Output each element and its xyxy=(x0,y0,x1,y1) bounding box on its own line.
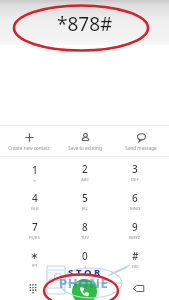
button[interactable]: Backspace xyxy=(123,273,153,300)
staticText: DEF xyxy=(131,177,139,183)
staticText: Save to existing xyxy=(68,145,102,151)
button[interactable]: 2 xyxy=(60,158,110,187)
staticText: ABC xyxy=(81,177,90,183)
button[interactable]: 0 xyxy=(60,245,110,274)
staticText: 7 xyxy=(32,220,38,234)
button[interactable]: 6 xyxy=(110,187,160,216)
button[interactable]: Show keypad xyxy=(18,273,48,300)
staticText: 5 xyxy=(82,191,88,205)
button[interactable]: Create new contact xyxy=(0,126,57,156)
staticText: *878# xyxy=(57,11,113,37)
staticText: # xyxy=(132,249,139,263)
button[interactable]: 7 xyxy=(9,216,60,245)
staticText: 9 xyxy=(132,220,138,234)
button[interactable]: 3 xyxy=(110,158,160,187)
staticText: Create new contact xyxy=(8,145,50,151)
button[interactable]: ∗ xyxy=(9,245,60,274)
staticText: (P) xyxy=(32,263,38,269)
staticText: ∞ xyxy=(33,178,37,183)
staticText: 0 xyxy=(82,249,88,263)
staticText: (W) xyxy=(132,264,139,270)
staticText: + xyxy=(84,264,87,270)
staticText: ∗ xyxy=(30,250,39,262)
button[interactable]: 1 xyxy=(9,158,60,187)
staticText: 3 xyxy=(132,162,138,176)
staticText: GHI xyxy=(31,206,39,212)
staticText: Send message xyxy=(125,145,157,151)
button[interactable]: Save to existing xyxy=(57,126,113,156)
button[interactable]: 5 xyxy=(60,187,110,216)
staticText: PQRS xyxy=(29,235,40,241)
button[interactable]: # xyxy=(110,245,160,274)
staticText: 8 xyxy=(82,220,88,234)
staticText: 4 xyxy=(32,191,38,205)
staticText: MNO xyxy=(130,206,141,212)
button[interactable]: Send message xyxy=(113,126,169,156)
staticText: 6 xyxy=(132,191,138,205)
button[interactable]: Call xyxy=(72,279,97,300)
staticText: STOR xyxy=(68,266,103,279)
staticText: PHONE xyxy=(59,274,109,292)
staticText: JKL xyxy=(82,206,88,212)
staticText: 2 xyxy=(82,162,88,176)
button[interactable]: 8 xyxy=(60,216,110,245)
staticText: WXYZ xyxy=(129,235,141,241)
staticText: 1 xyxy=(32,163,38,177)
button[interactable]: 4 xyxy=(9,187,60,216)
button[interactable]: 9 xyxy=(110,216,160,245)
staticText: TUV xyxy=(81,235,89,241)
